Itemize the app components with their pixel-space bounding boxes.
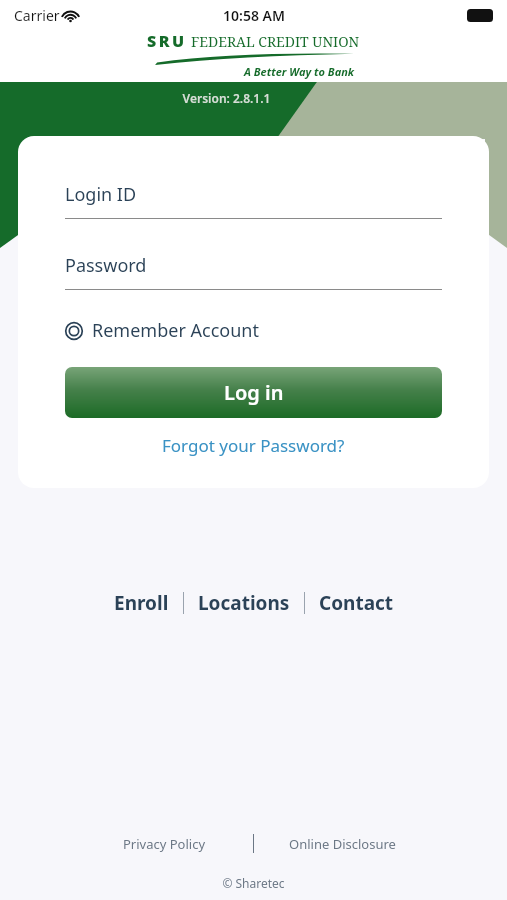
staticText: Login ID	[65, 182, 137, 207]
staticText: Password	[65, 253, 147, 278]
button[interactable]: Privacy Policy	[76, 835, 253, 853]
staticText: FEDERAL CREDIT UNION	[191, 32, 360, 51]
staticText: SRU	[147, 30, 187, 52]
button[interactable]: Forgot your Password?	[65, 434, 442, 457]
staticText: Contact	[319, 590, 394, 616]
staticText: Online Disclosure	[289, 835, 396, 853]
button[interactable]: Login ID	[65, 182, 442, 219]
staticText: 10:58 AM	[223, 6, 285, 25]
button[interactable]: Online Disclosure	[254, 835, 431, 853]
button[interactable]: Log in	[65, 367, 442, 418]
button[interactable]: Contact	[305, 584, 408, 622]
staticText: Log in	[224, 379, 284, 406]
staticText: © Sharetec	[0, 875, 507, 891]
button[interactable]: Locations	[184, 584, 304, 622]
other: Battery	[467, 9, 493, 22]
staticText: Version: 2.8.1.1	[0, 90, 453, 106]
staticText: Forgot your Password?	[162, 434, 345, 457]
button[interactable]: Enroll	[100, 584, 183, 622]
staticText: A Better Way to Bank	[244, 64, 355, 79]
button[interactable]: Password	[65, 253, 442, 290]
staticText: Locations	[198, 590, 290, 616]
staticText: Carrier	[14, 6, 60, 25]
button[interactable]: Remember Account	[65, 314, 259, 347]
staticText: Remember Account	[92, 318, 259, 343]
staticText: Enroll	[114, 590, 169, 616]
other: Wi-Fi signal	[62, 9, 79, 22]
staticText: Privacy Policy	[123, 835, 206, 853]
